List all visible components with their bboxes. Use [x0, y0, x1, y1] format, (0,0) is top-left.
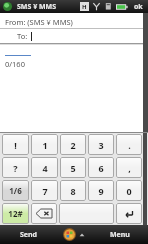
staticText: To:	[17, 31, 28, 41]
staticText: 0	[126, 185, 132, 197]
staticText: 1/6	[9, 185, 22, 196]
button[interactable]: .	[116, 134, 142, 155]
button[interactable]: Menu	[91, 225, 148, 244]
button[interactable]: To:	[0, 29, 143, 43]
staticText: ?	[13, 162, 18, 174]
button[interactable]	[59, 203, 114, 224]
staticText: Menu	[110, 230, 130, 240]
staticText: 12#	[8, 208, 23, 219]
button[interactable]: 5	[60, 157, 86, 178]
staticText: SMS ¥ MMS	[17, 2, 57, 12]
button[interactable]: Enter	[116, 203, 142, 224]
staticText: 4	[42, 162, 48, 174]
button[interactable]: Backspace	[31, 203, 57, 224]
button[interactable]: ok	[132, 2, 145, 12]
staticText: 1	[42, 139, 48, 151]
staticText: 9	[98, 185, 104, 197]
staticText: 3	[98, 139, 104, 151]
staticText: 7	[42, 185, 48, 197]
button[interactable]: ,	[116, 157, 142, 178]
staticText: 8	[70, 185, 76, 197]
button[interactable]: 4	[31, 157, 58, 178]
button[interactable]: 2	[60, 134, 86, 155]
button[interactable]: From: (SMS ¥ MMS)	[0, 15, 143, 28]
button[interactable]: Start	[57, 225, 91, 244]
staticText: !	[14, 139, 17, 151]
button[interactable]: 12#	[2, 203, 29, 224]
button[interactable]: 8	[60, 180, 86, 201]
staticText: ,	[128, 162, 131, 174]
button[interactable]: 6	[88, 157, 114, 178]
button[interactable]: !	[2, 134, 29, 155]
staticText: 6	[98, 162, 104, 174]
staticText: H	[82, 3, 87, 11]
button[interactable]: 9	[88, 180, 114, 201]
staticText: 2	[70, 139, 76, 151]
staticText: 0/160	[5, 59, 25, 69]
button[interactable]: Send	[0, 225, 57, 244]
button[interactable]: 7	[31, 180, 58, 201]
staticText: From: (SMS ¥ MMS)	[5, 17, 73, 27]
staticText: ok	[134, 2, 143, 12]
button[interactable]: 3	[88, 134, 114, 155]
button[interactable]: 1	[31, 134, 58, 155]
button[interactable]: 1/6	[2, 180, 29, 201]
button[interactable]: ?	[2, 157, 29, 178]
button[interactable]: 0	[116, 180, 142, 201]
staticText: .	[128, 139, 131, 151]
staticText: 5	[70, 162, 76, 174]
staticText: Send	[20, 230, 38, 240]
